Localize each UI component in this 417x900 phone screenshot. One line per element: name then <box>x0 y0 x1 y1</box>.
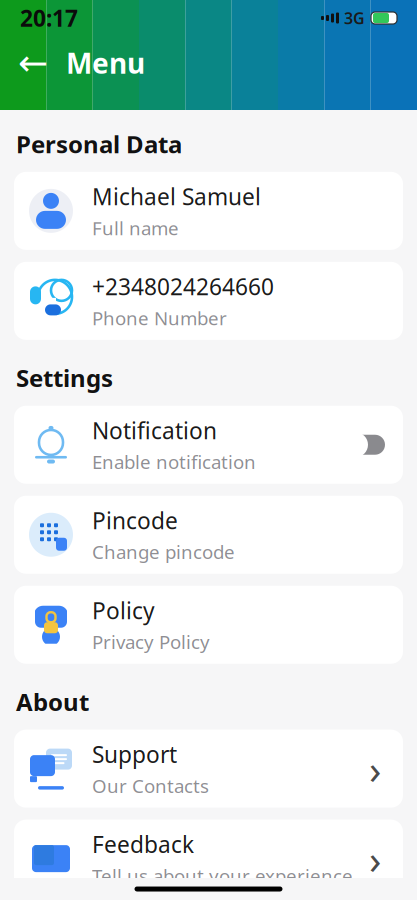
staticText: Policy <box>92 595 155 625</box>
staticText: Pincode <box>92 505 178 535</box>
staticText: Menu <box>66 44 145 82</box>
staticText: Support <box>92 739 177 769</box>
button[interactable]: +2348024264660 <box>14 262 403 340</box>
staticText: 20:17 <box>20 3 78 33</box>
button[interactable]: Michael Samuel <box>14 172 403 250</box>
staticText: Tell us about your experience <box>92 863 353 888</box>
staticText: Full name <box>92 215 179 240</box>
button[interactable]: Policy <box>14 586 403 664</box>
staticText: Privacy Policy <box>92 629 210 654</box>
staticText: About <box>16 686 89 718</box>
staticText: Michael Samuel <box>92 181 261 211</box>
staticText: Change pincode <box>92 539 235 564</box>
staticText: +2348024264660 <box>92 271 274 301</box>
staticText: Phone Number <box>92 305 227 330</box>
staticText: › <box>369 742 381 795</box>
staticText: Feedback <box>92 829 194 859</box>
button[interactable]: Back <box>10 40 56 86</box>
button[interactable]: Notification <box>14 406 403 484</box>
staticText: Notification <box>92 415 217 445</box>
button[interactable]: Pincode <box>14 496 403 574</box>
button[interactable]: Support <box>14 730 403 808</box>
staticText: Enable notification <box>92 449 256 474</box>
staticText: › <box>369 832 381 885</box>
staticText: ← <box>18 43 48 83</box>
staticText: Our Contacts <box>92 773 209 798</box>
staticText: Settings <box>16 362 113 394</box>
button[interactable]: Feedback <box>14 820 403 898</box>
staticText: Personal Data <box>16 128 182 160</box>
staticText: 3G <box>344 7 365 29</box>
